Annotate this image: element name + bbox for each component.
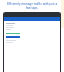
staticText: Efficiently manage traffic with just a f… <box>4 2 60 10</box>
